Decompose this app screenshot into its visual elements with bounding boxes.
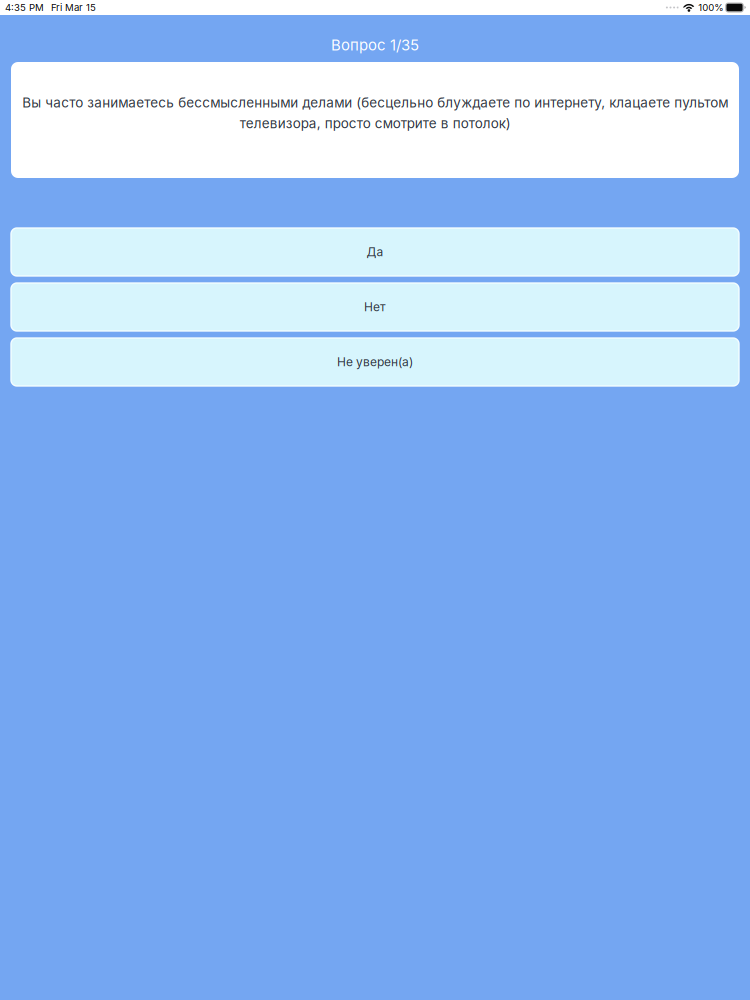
staticText: Вы часто занимаетесь бессмысленными дела… bbox=[22, 94, 728, 132]
staticText: Да bbox=[366, 245, 383, 259]
staticText: Нет bbox=[364, 300, 386, 314]
staticText: 4:35 PM bbox=[5, 2, 44, 13]
staticText: 100% bbox=[698, 2, 723, 13]
staticText: Не уверен(а) bbox=[337, 355, 413, 369]
staticText: Вопрос 1/35 bbox=[331, 36, 419, 54]
button[interactable]: Не уверен(а) bbox=[11, 338, 739, 386]
button[interactable]: Да bbox=[11, 228, 739, 276]
staticText: Fri Mar 15 bbox=[51, 2, 96, 13]
button[interactable]: Нет bbox=[11, 283, 739, 331]
